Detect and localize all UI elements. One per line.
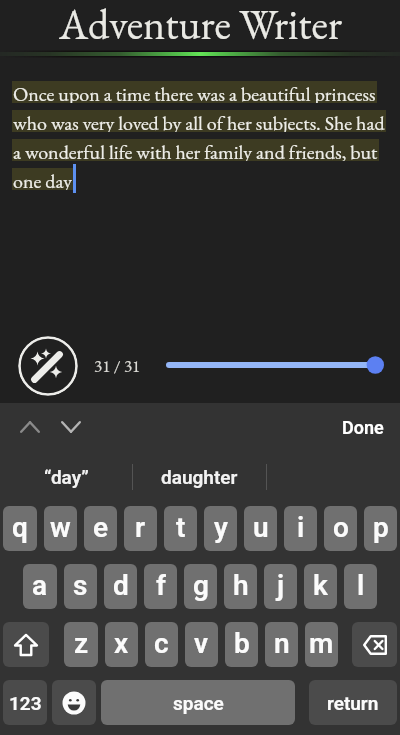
staticText: l [357,569,365,602]
staticText: r [135,511,146,544]
staticText: x [114,627,129,660]
staticText: s [73,569,88,602]
button[interactable]: z [64,622,98,667]
button[interactable]: k [304,564,337,609]
staticText: e [93,511,109,544]
staticText: n [274,627,290,660]
staticText: a [32,569,48,602]
staticText: v [194,627,209,660]
button[interactable]: j [264,564,297,609]
staticText: p [373,511,389,544]
button[interactable]: p [364,506,397,551]
button[interactable]: x [105,622,138,667]
button[interactable]: i [284,506,317,551]
staticText: f [156,569,166,602]
button[interactable]: Done [336,411,390,444]
button[interactable]: 123 [3,680,47,725]
staticText: space [173,692,224,714]
staticText: y [214,511,228,544]
button[interactable]: n [265,622,298,667]
staticText: one day [13,168,72,190]
button[interactable]: e [84,506,117,551]
staticText: o [333,511,349,544]
button[interactable]: q [3,506,37,551]
button[interactable]: d [104,564,137,609]
staticText: q [12,511,28,544]
button[interactable]: t [164,506,197,551]
button[interactable]: u [244,506,277,551]
button[interactable]: Previous [12,409,48,445]
button[interactable]: return [309,680,397,725]
staticText: g [193,569,209,602]
staticText: m [309,627,334,660]
staticText: c [154,627,169,660]
staticText: return [327,692,379,714]
button[interactable]: f [144,564,177,609]
button[interactable]: o [324,506,357,551]
staticText: h [233,569,249,602]
staticText: Adventure Writer [59,0,342,47]
button[interactable]: l [344,564,377,609]
staticText: u [253,511,269,544]
staticText: “day” [44,466,89,488]
button[interactable]: v [185,622,218,667]
staticText: i [297,511,305,544]
button[interactable]: s [64,564,97,609]
staticText: k [313,569,328,602]
button[interactable]: “day” [0,451,132,502]
staticText: w [50,511,71,544]
staticText: who was very loved by all of her subject… [13,110,385,132]
button[interactable]: Generate with magic [18,336,78,396]
staticText: t [176,511,186,544]
button[interactable]: c [145,622,178,667]
staticText: b [234,627,250,660]
button[interactable]: space [101,680,295,725]
button[interactable]: Emoji [52,680,96,725]
button[interactable]: w [44,506,77,551]
button[interactable]: m [305,622,338,667]
button[interactable]: g [184,564,217,609]
staticText: j [277,569,285,602]
staticText: a wonderful life with her family and fri… [13,139,378,161]
staticText: 123 [9,692,42,714]
button[interactable]: Next [53,409,89,445]
button[interactable]: Backspace [352,622,397,667]
button[interactable]: y [204,506,237,551]
button[interactable]: Shift [3,622,49,667]
staticText: daughter [161,466,238,488]
button[interactable]: a [23,564,57,609]
staticText: Done [342,417,384,438]
staticText: d [113,569,129,602]
button[interactable]: b [225,622,258,667]
button[interactable]: r [124,506,157,551]
staticText: 31 / 31 [94,355,141,377]
button[interactable]: daughter [133,451,266,502]
button[interactable]: h [224,564,257,609]
staticText: z [74,627,89,660]
staticText: Once upon a time there was a beautiful p… [13,81,376,103]
